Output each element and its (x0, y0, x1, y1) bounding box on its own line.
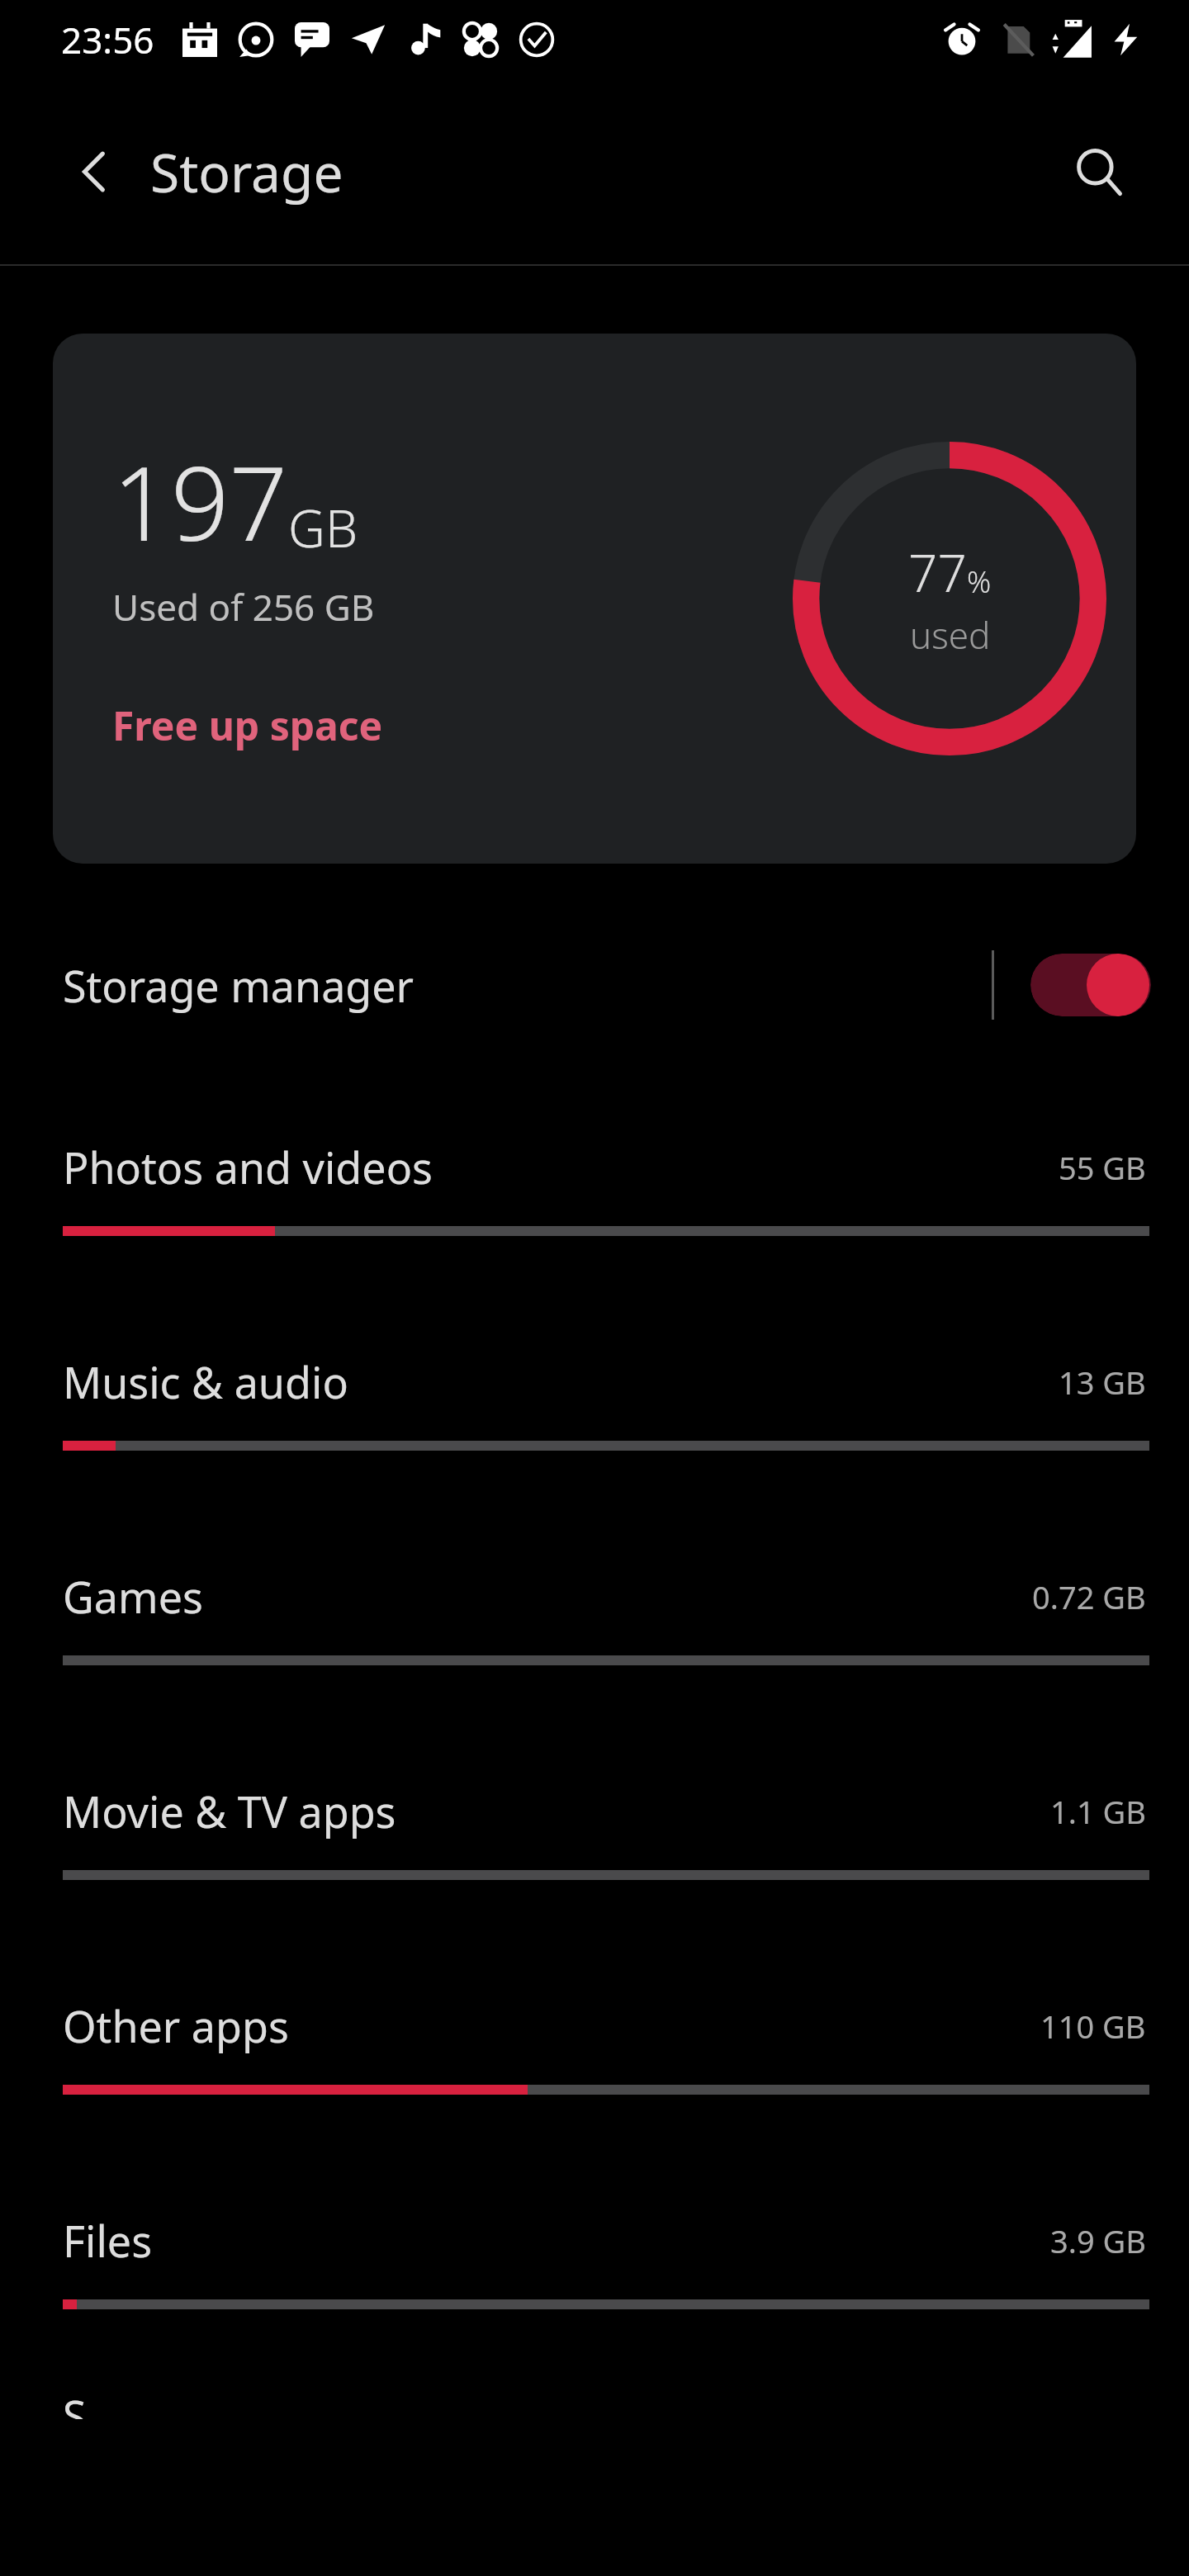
button[interactable]: 197 (53, 334, 1136, 864)
staticText: Photos and videos (63, 1138, 433, 1196)
button[interactable]: Music & audio (0, 1306, 1189, 1521)
staticText: S (63, 2386, 87, 2419)
staticText: Movie & TV apps (63, 1782, 396, 1840)
staticText: Other apps (63, 1996, 289, 2055)
staticText: Music & audio (63, 1352, 348, 1411)
button[interactable]: Storage manager (0, 915, 1189, 1055)
staticText: Storage (150, 136, 343, 208)
button[interactable]: Movie & TV apps (0, 1735, 1189, 1950)
staticText: Used of 256 GB (112, 582, 375, 632)
staticText: 77 (908, 537, 967, 607)
staticText: Files (63, 2211, 153, 2270)
button[interactable]: Other apps (0, 1950, 1189, 2165)
staticText: Free up space (112, 698, 383, 752)
button[interactable]: Files (0, 2165, 1189, 2379)
button[interactable]: Search (1054, 126, 1144, 217)
staticText: Storage manager (63, 956, 414, 1015)
staticText: 3.9 GB (1050, 2219, 1146, 2262)
staticText: 110 GB (1040, 2005, 1146, 2048)
staticText: 0.72 GB (1032, 1575, 1146, 1618)
staticText: 23:56 (61, 15, 154, 64)
button[interactable]: Storage manager toggle (1030, 954, 1151, 1016)
staticText: GB (288, 493, 358, 562)
button[interactable]: Free up space (106, 690, 390, 760)
staticText: 13 GB (1059, 1361, 1146, 1404)
button[interactable]: Back (50, 126, 140, 217)
staticText: 197 (112, 431, 288, 571)
staticText: % (967, 561, 992, 602)
button[interactable]: Photos and videos (0, 1091, 1189, 1306)
staticText: used (910, 610, 991, 660)
staticText: Games (63, 1567, 203, 1626)
staticText: 1.1 GB (1050, 1790, 1146, 1833)
button[interactable]: Games (0, 1521, 1189, 1735)
staticText: 55 GB (1059, 1146, 1146, 1189)
